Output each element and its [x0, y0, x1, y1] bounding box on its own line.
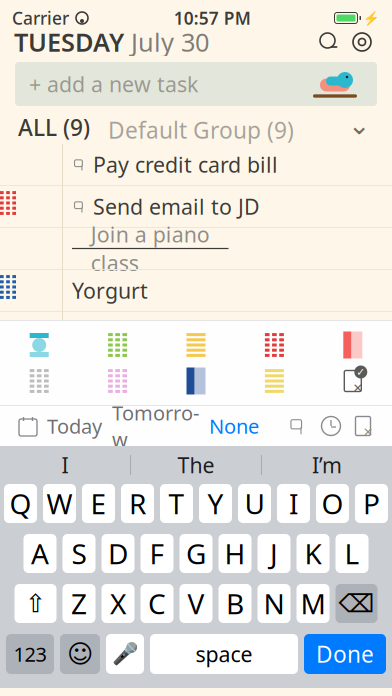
- staticText: The: [177, 451, 214, 479]
- staticText: N: [263, 585, 284, 622]
- staticText: ALL (9): [18, 112, 90, 142]
- button[interactable]: Red tape: [235, 327, 314, 363]
- staticText: Default Group (9): [108, 115, 294, 145]
- staticText: O: [321, 485, 343, 522]
- button[interactable]: Green tape: [78, 327, 157, 363]
- staticText: Z: [71, 585, 87, 622]
- staticText: Q: [9, 485, 31, 522]
- button[interactable]: The: [131, 446, 261, 484]
- button[interactable]: J: [257, 534, 290, 573]
- button[interactable]: Done: [304, 634, 386, 674]
- staticText: H: [224, 535, 245, 572]
- staticText: R: [129, 485, 146, 522]
- staticText: S: [71, 535, 86, 572]
- staticText: I: [61, 451, 68, 479]
- button[interactable]: X: [101, 584, 134, 623]
- staticText: Yorgurt: [72, 276, 148, 305]
- button[interactable]: Settings: [346, 26, 378, 58]
- staticText: C: [148, 585, 166, 622]
- staticText: space: [195, 640, 252, 668]
- button[interactable]: Search: [314, 27, 344, 57]
- staticText: 10:57 PM: [174, 6, 251, 29]
- button[interactable]: 🎤: [106, 634, 144, 674]
- staticText: Today: [47, 413, 102, 439]
- button[interactable]: Clear: [348, 411, 378, 441]
- staticText: ✕: [363, 425, 373, 439]
- button[interactable]: ALL (9): [18, 102, 90, 148]
- button[interactable]: Pink tape: [78, 363, 157, 399]
- button[interactable]: G: [179, 534, 212, 573]
- button[interactable]: R: [121, 484, 154, 523]
- staticText: ☺: [67, 640, 93, 668]
- staticText: Pay credit card bill: [93, 150, 278, 179]
- staticText: I’m: [312, 451, 342, 479]
- button[interactable]: H: [218, 534, 251, 573]
- button[interactable]: space: [150, 634, 298, 674]
- button[interactable]: Teal tape: [0, 327, 78, 363]
- button[interactable]: Pay credit card bill: [0, 144, 392, 186]
- button[interactable]: S: [62, 534, 95, 573]
- button[interactable]: Z: [62, 584, 95, 623]
- button[interactable]: Join a piano class: [0, 228, 392, 270]
- button[interactable]: K: [296, 534, 329, 573]
- button[interactable]: ⇧: [14, 584, 56, 623]
- button[interactable]: I: [277, 484, 310, 523]
- button[interactable]: I’m: [262, 446, 392, 484]
- button[interactable]: 123: [6, 634, 54, 674]
- staticText: I: [289, 485, 298, 522]
- button[interactable]: W: [43, 484, 76, 523]
- button[interactable]: U: [238, 484, 271, 523]
- button[interactable]: ☺: [60, 634, 100, 674]
- button[interactable]: F: [140, 534, 173, 573]
- staticText: X: [110, 585, 126, 622]
- button[interactable]: Reminder: [314, 411, 348, 441]
- button[interactable]: Y: [199, 484, 232, 523]
- button[interactable]: A: [23, 534, 56, 573]
- button[interactable]: Coral tape: [314, 327, 392, 363]
- button[interactable]: Remove tape: [314, 363, 392, 399]
- button[interactable]: None: [204, 413, 264, 439]
- button[interactable]: D: [101, 534, 134, 573]
- staticText: Y: [207, 485, 223, 522]
- staticText: + add a new task: [29, 70, 198, 98]
- button[interactable]: B: [218, 584, 251, 623]
- staticText: A: [31, 535, 49, 572]
- staticText: D: [108, 535, 128, 572]
- button[interactable]: E: [82, 484, 115, 523]
- button[interactable]: Pin task: [280, 411, 314, 441]
- staticText: W: [46, 485, 72, 522]
- button[interactable]: N: [257, 584, 290, 623]
- staticText: P: [363, 485, 380, 522]
- staticText: TUESDAY: [14, 25, 124, 59]
- button[interactable]: Blue tape: [157, 363, 235, 399]
- button[interactable]: Send email to JD: [0, 186, 392, 228]
- button[interactable]: C: [140, 584, 173, 623]
- button[interactable]: Gold tape: [235, 363, 314, 399]
- button[interactable]: Default Group (9): [90, 105, 302, 145]
- button[interactable]: Yorgurt: [0, 270, 392, 312]
- button[interactable]: Grey tape: [0, 363, 78, 399]
- button[interactable]: Expand groups: [344, 110, 374, 140]
- button[interactable]: V: [179, 584, 212, 623]
- staticText: ✓: [356, 366, 365, 378]
- staticText: M: [300, 585, 325, 622]
- staticText: G: [186, 535, 206, 572]
- staticText: ⚡: [363, 10, 380, 26]
- staticText: ✕: [353, 381, 363, 395]
- button[interactable]: Due date: [14, 412, 42, 440]
- button[interactable]: L: [335, 534, 368, 573]
- staticText: J: [270, 535, 278, 572]
- button[interactable]: O: [316, 484, 349, 523]
- staticText: Join a piano class: [91, 220, 210, 277]
- button[interactable]: Tomorrow: [107, 399, 204, 452]
- button[interactable]: M: [296, 584, 329, 623]
- staticText: ⌄: [348, 110, 370, 140]
- button[interactable]: I: [0, 446, 130, 484]
- button[interactable]: Q: [4, 484, 37, 523]
- button[interactable]: P: [355, 484, 388, 523]
- button[interactable]: Today: [42, 413, 107, 439]
- button[interactable]: Yellow tape: [157, 327, 235, 363]
- staticText: Done: [316, 639, 374, 669]
- button[interactable]: T: [160, 484, 193, 523]
- button[interactable]: ⌫: [335, 584, 377, 623]
